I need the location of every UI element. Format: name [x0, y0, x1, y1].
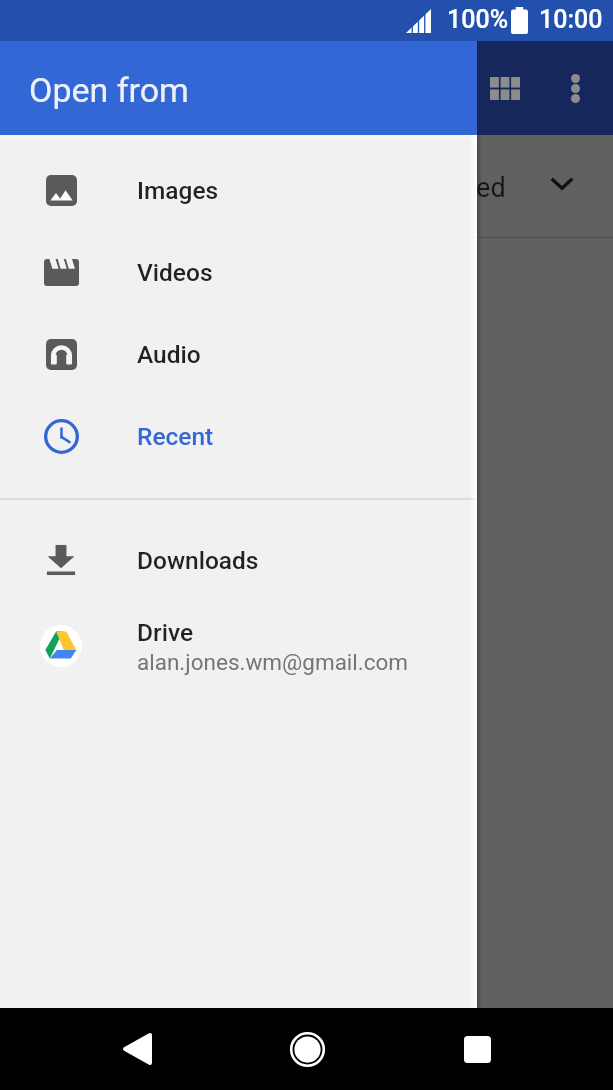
button[interactable]: Images — [0, 149, 477, 231]
button[interactable]: Back — [97, 1008, 177, 1090]
staticText: Images — [137, 176, 219, 205]
staticText: Sorted — [426, 172, 506, 204]
button[interactable]: More options — [551, 64, 599, 112]
staticText: Videos — [137, 258, 213, 287]
button[interactable]: Audio — [0, 313, 477, 395]
button[interactable]: Sorted — [426, 153, 574, 221]
button[interactable]: Drive — [0, 605, 477, 687]
button[interactable]: Recent — [0, 395, 477, 477]
staticText: Audio — [137, 340, 201, 369]
button[interactable]: Videos — [0, 231, 477, 313]
staticText: Recent — [137, 422, 214, 451]
button[interactable]: Grid view — [481, 64, 529, 112]
staticText: 10:00 — [539, 5, 603, 34]
staticText: Open from — [29, 70, 189, 110]
button[interactable]: Close drawer — [477, 0, 613, 1090]
staticText: alan.jones.wm@gmail.com — [137, 649, 409, 675]
staticText: Downloads — [137, 546, 259, 575]
button[interactable]: Downloads — [0, 519, 477, 601]
staticText: Drive — [137, 618, 194, 647]
button[interactable]: Home — [267, 1008, 347, 1090]
staticText: 100% — [447, 5, 509, 34]
button[interactable]: Recent apps — [437, 1008, 517, 1090]
